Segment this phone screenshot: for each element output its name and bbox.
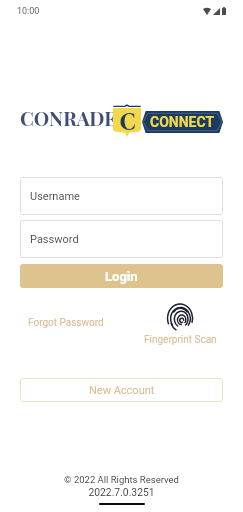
staticText: Fingerprint Scan <box>144 334 217 346</box>
staticText: C <box>119 108 136 137</box>
other: Fingerprint Scan <box>167 302 194 333</box>
staticText: New Account <box>89 384 155 397</box>
staticText: Login <box>105 269 138 284</box>
staticText: © 2022 All Rights Reserved <box>64 474 179 485</box>
staticText: 10:00 <box>17 6 40 17</box>
button[interactable]: Login <box>20 264 223 288</box>
button[interactable]: New Account <box>20 378 223 402</box>
button[interactable]: Fingerprint Scan <box>139 302 221 346</box>
button[interactable]: Username <box>20 177 223 215</box>
button[interactable]: Password <box>20 220 223 258</box>
staticText: Password <box>30 233 79 246</box>
staticText: CONRADE <box>20 105 117 131</box>
staticText: CONNECT <box>150 114 215 130</box>
staticText: 2022.7.0.3251 <box>88 486 155 498</box>
staticText: Forgot Password <box>28 317 104 329</box>
staticText: Username <box>30 190 80 203</box>
button[interactable]: Forgot Password <box>28 317 104 329</box>
